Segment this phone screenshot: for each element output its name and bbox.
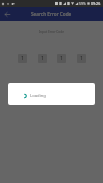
staticText: 1 [21,55,24,62]
staticText: 1 [80,55,83,62]
button[interactable]: 1 [38,54,47,63]
button[interactable]: Back [0,7,14,21]
button[interactable]: 1 [77,54,86,63]
staticText: 1 [41,55,44,62]
staticText: Search Error Code [31,11,72,17]
staticText: 59% [79,1,86,6]
button[interactable]: 1 [18,54,27,63]
staticText: 1 [60,55,63,62]
button[interactable]: 1 [57,54,66,63]
staticText: Loading [30,93,46,99]
staticText: 09:26 [91,1,101,6]
staticText: Input Error Code [0,30,103,34]
